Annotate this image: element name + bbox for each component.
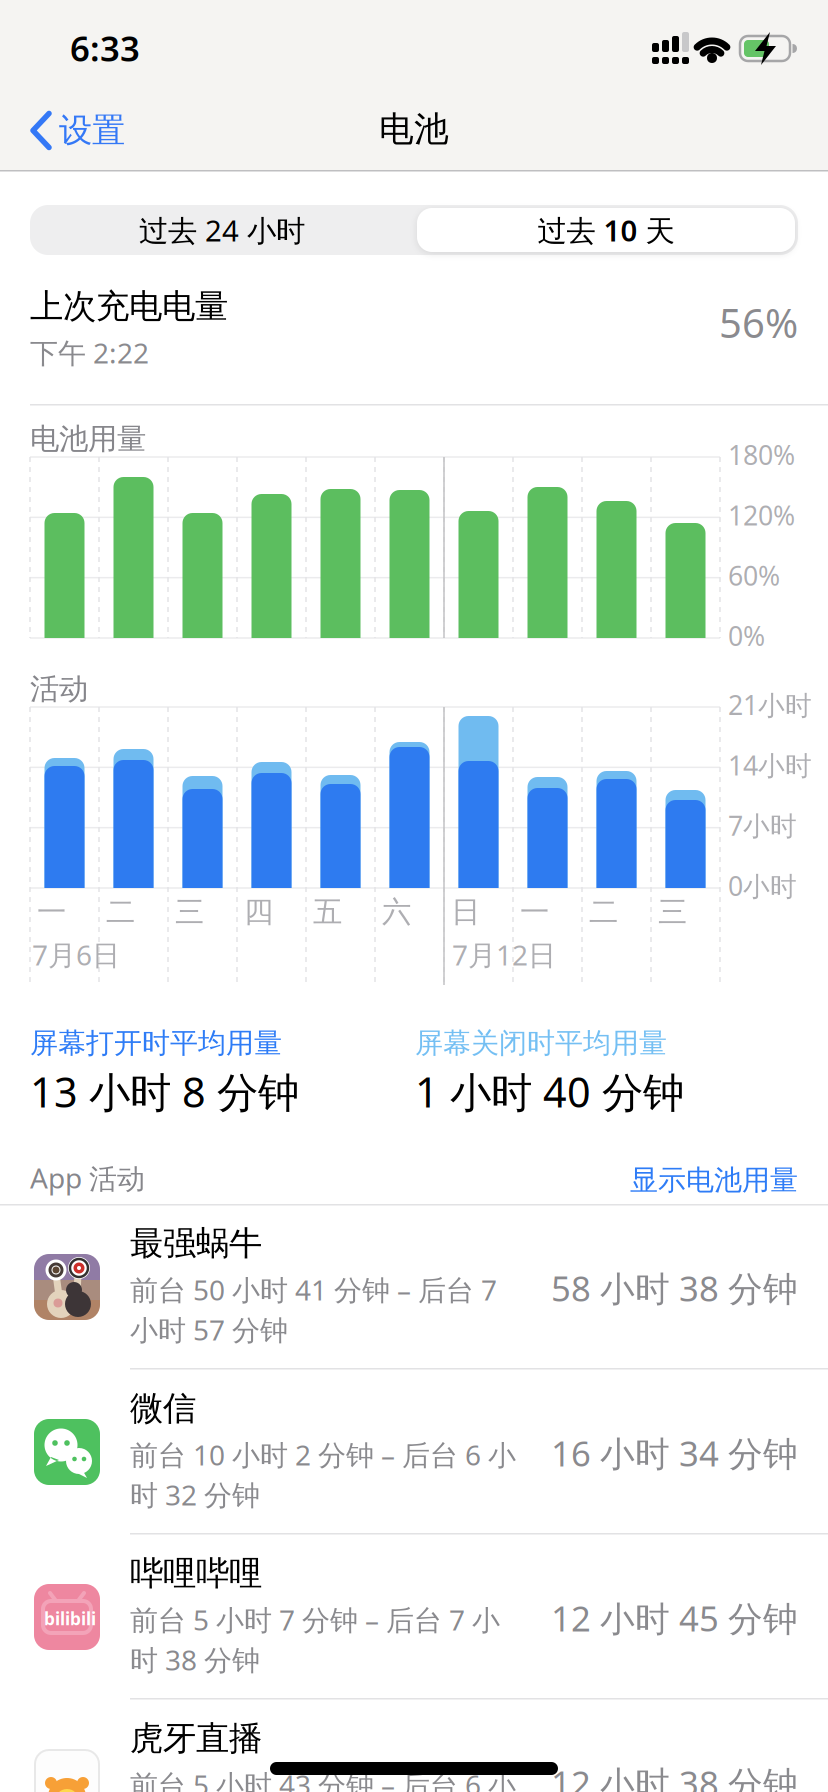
staticText: 12 小时 45 分钟: [551, 1595, 798, 1641]
button[interactable]: 设置: [30, 110, 125, 151]
staticText: 时 32 分钟: [130, 1476, 260, 1513]
staticText: 0%: [728, 618, 765, 653]
staticText: 前台 5 小时 7 分钟 – 后台 7 小: [130, 1601, 500, 1638]
staticText: 16 小时 34 分钟: [551, 1430, 798, 1476]
staticText: 前台 10 小时 2 分钟 – 后台 6 小: [130, 1436, 516, 1473]
staticText: 哔哩哔哩: [130, 1553, 262, 1594]
staticText: 微信: [130, 1388, 196, 1429]
staticText: 日: [451, 894, 480, 930]
staticText: 1 小时 40 分钟: [415, 1064, 684, 1119]
staticText: 二: [106, 894, 135, 930]
staticText: 三: [175, 894, 204, 930]
staticText: 三: [658, 894, 687, 930]
staticText: 过去 24 小时: [139, 210, 305, 249]
staticText: 屏幕关闭时平均用量: [415, 1026, 667, 1060]
staticText: 二: [589, 894, 618, 930]
staticText: 14小时: [728, 747, 812, 783]
staticText: 56%: [719, 296, 798, 349]
staticText: 屏幕打开时平均用量: [30, 1026, 282, 1060]
staticText: 7月12日: [452, 936, 556, 973]
staticText: bilibili: [44, 1607, 96, 1630]
staticText: 58 小时 38 分钟: [551, 1265, 798, 1311]
staticText: 7小时: [728, 808, 797, 843]
button[interactable]: 过去 10 天: [417, 205, 795, 255]
staticText: 下午 2:22: [30, 334, 149, 371]
staticText: 一: [37, 894, 66, 930]
staticText: 180%: [728, 437, 795, 472]
button[interactable]: 最强蜗牛: [0, 1205, 828, 1369]
staticText: 12 小时 38 分钟: [551, 1760, 798, 1792]
staticText: 电池: [379, 108, 449, 151]
staticText: 活动: [30, 671, 88, 707]
button[interactable]: 显示电池用量: [0, 1163, 798, 1197]
staticText: 设置: [59, 110, 125, 151]
staticText: 前台 5 小时 43 分钟 – 后台 6 小: [130, 1766, 516, 1792]
staticText: 电池用量: [30, 421, 146, 457]
staticText: 五: [313, 894, 342, 930]
button[interactable]: 微信: [0, 1370, 828, 1534]
staticText: 7月6日: [32, 936, 120, 973]
staticText: 四: [244, 894, 273, 930]
staticText: 时 38 分钟: [130, 1641, 260, 1678]
staticText: App 活动: [30, 1159, 145, 1196]
staticText: 60%: [728, 558, 780, 593]
staticText: 120%: [728, 497, 795, 533]
button[interactable]: 过去 24 小时: [30, 205, 414, 255]
staticText: 一: [520, 894, 549, 930]
staticText: 6:33: [70, 25, 140, 71]
staticText: 显示电池用量: [630, 1163, 798, 1197]
button[interactable]: 虎牙直播: [0, 1700, 828, 1792]
staticText: 最强蜗牛: [130, 1223, 262, 1264]
staticText: 前台 50 小时 41 分钟 – 后台 7: [130, 1271, 497, 1308]
staticText: 小时 57 分钟: [130, 1311, 288, 1348]
staticText: 虎牙直播: [130, 1718, 262, 1759]
staticText: 21小时: [728, 687, 812, 722]
staticText: 上次充电电量: [30, 286, 228, 327]
staticText: 六: [382, 894, 411, 930]
staticText: 过去 10 天: [537, 210, 674, 249]
staticText: 13 小时 8 分钟: [30, 1064, 299, 1119]
button[interactable]: bilibili: [0, 1535, 828, 1699]
staticText: 0小时: [728, 868, 797, 903]
